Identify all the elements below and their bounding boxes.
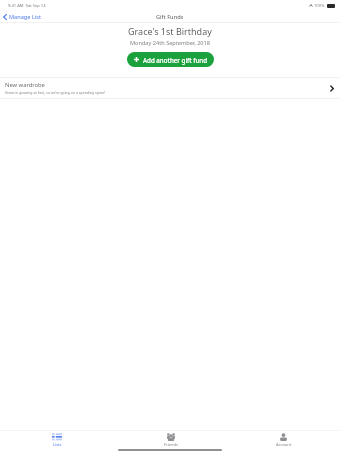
button[interactable]: Add another gift fund [127,52,214,67]
staticText: Grace is growing so fast, so we're going… [5,90,106,95]
staticText: Lists [53,442,62,447]
staticText: Friends [164,442,178,447]
staticText: 100% [314,3,325,9]
staticText: 9:41 AM Sat Sep 14 [8,3,46,9]
staticText: Gift Funds [156,13,184,21]
staticText: New wardrobe [5,81,45,89]
button[interactable]: Manage List [0,11,45,22]
staticText: Account [276,442,292,447]
staticText: Monday 24th September, 2018 [130,39,210,47]
button[interactable]: Account [227,431,340,448]
staticText: Add another gift fund [143,56,208,64]
button[interactable]: Lists [0,431,114,448]
button[interactable]: Friends [114,431,227,448]
button[interactable]: New wardrobe [0,78,340,98]
staticText: Manage List [9,13,41,20]
staticText: Grace's 1st Birthday [128,25,212,37]
